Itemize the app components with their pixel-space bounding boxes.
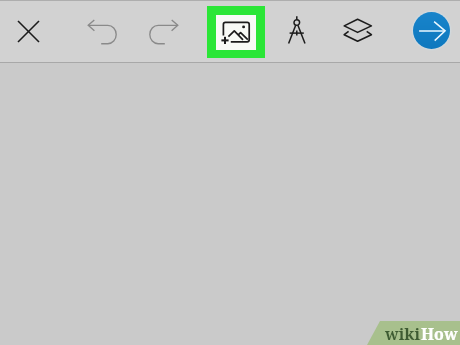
button[interactable]: Close — [9, 11, 49, 51]
button[interactable]: Next — [413, 12, 450, 49]
button[interactable]: Compass tool — [277, 11, 317, 51]
button[interactable]: Undo — [82, 11, 122, 51]
button[interactable]: Redo — [144, 11, 184, 51]
button[interactable]: Layers — [338, 11, 378, 51]
staticText: How — [421, 323, 458, 345]
staticText: wiki — [385, 323, 421, 345]
button[interactable]: Add image — [207, 6, 265, 58]
